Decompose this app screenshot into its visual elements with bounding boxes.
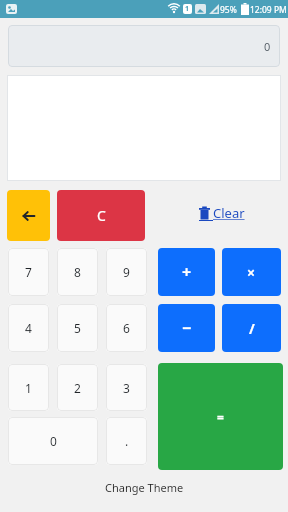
button[interactable]: Clear <box>199 204 245 222</box>
staticText: 4 <box>25 320 32 336</box>
staticText: 3 <box>123 380 130 396</box>
button[interactable]: 8 <box>57 248 98 296</box>
button[interactable]: 9 <box>106 248 147 296</box>
staticText: 6 <box>123 320 130 336</box>
button[interactable]: = <box>158 363 283 470</box>
button[interactable]: C <box>57 190 145 241</box>
button[interactable] <box>7 190 50 241</box>
button[interactable]: / <box>222 304 281 352</box>
staticText: 95% <box>220 4 237 16</box>
button[interactable]: 4 <box>8 304 49 352</box>
staticText: 12:09 PM <box>250 4 287 16</box>
staticText: 2 <box>74 380 81 396</box>
staticText: 0 <box>50 433 57 449</box>
button[interactable]: 7 <box>8 248 49 296</box>
staticText: × <box>247 263 256 282</box>
staticText: Clear <box>213 204 245 222</box>
button[interactable]: 0 <box>8 417 98 465</box>
staticText: 5 <box>74 320 81 336</box>
button[interactable]: − <box>158 304 215 352</box>
staticText: 1 <box>185 4 190 14</box>
staticText: − <box>182 317 192 339</box>
staticText: 7 <box>25 264 32 280</box>
staticText: C <box>97 206 106 225</box>
staticText: 9 <box>123 264 130 280</box>
button[interactable]: 6 <box>106 304 147 352</box>
button[interactable]: + <box>158 248 215 296</box>
staticText: 1 <box>25 380 32 396</box>
button[interactable]: 3 <box>106 364 147 411</box>
button[interactable]: . <box>106 417 147 465</box>
staticText: = <box>217 409 224 425</box>
button[interactable]: Change Theme <box>105 480 184 495</box>
button[interactable]: 5 <box>57 304 98 352</box>
button[interactable]: 2 <box>57 364 98 411</box>
staticText: / <box>249 319 255 338</box>
button[interactable]: 1 <box>8 364 49 411</box>
button[interactable]: × <box>222 248 281 296</box>
staticText: 0 <box>264 39 271 54</box>
staticText: + <box>182 261 192 283</box>
staticText: . <box>125 433 129 449</box>
staticText: 8 <box>74 264 81 280</box>
